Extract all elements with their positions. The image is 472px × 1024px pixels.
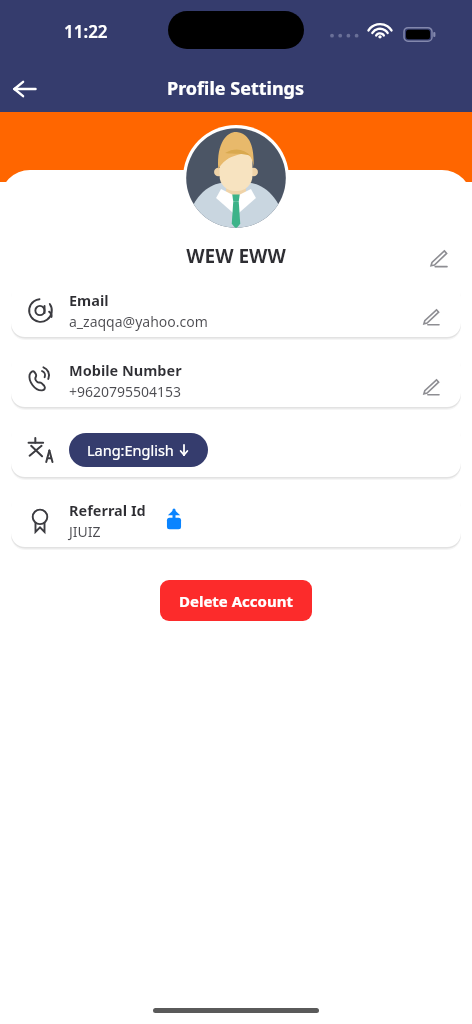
button[interactable]: Edit email (413, 300, 447, 334)
button[interactable]: Share referral id (158, 504, 190, 536)
staticText: WEW EWW (186, 243, 286, 269)
staticText: Profile Settings (167, 76, 305, 101)
button[interactable]: Edit name (420, 243, 454, 273)
staticText: 11:22 (64, 20, 108, 43)
button[interactable]: Lang:English (69, 433, 208, 467)
staticText: Lang:English (87, 440, 174, 460)
button[interactable]: Mobile Number (11, 353, 461, 407)
staticText: Mobile Number (69, 360, 182, 380)
button[interactable]: Back (4, 68, 46, 110)
staticText: Email (69, 290, 109, 310)
button[interactable]: Edit mobile number (413, 370, 447, 404)
staticText: +9620795504153 (69, 382, 182, 401)
button[interactable]: Email (11, 283, 461, 337)
button[interactable]: Referral Id (11, 493, 461, 547)
button[interactable]: Delete Account (160, 580, 312, 621)
staticText: Delete Account (179, 591, 293, 611)
button[interactable]: Lang:English (11, 423, 461, 477)
staticText: a_zaqqa@yahoo.com (69, 312, 208, 331)
staticText: Referral Id (69, 500, 146, 520)
staticText: JIUIZ (69, 522, 101, 541)
